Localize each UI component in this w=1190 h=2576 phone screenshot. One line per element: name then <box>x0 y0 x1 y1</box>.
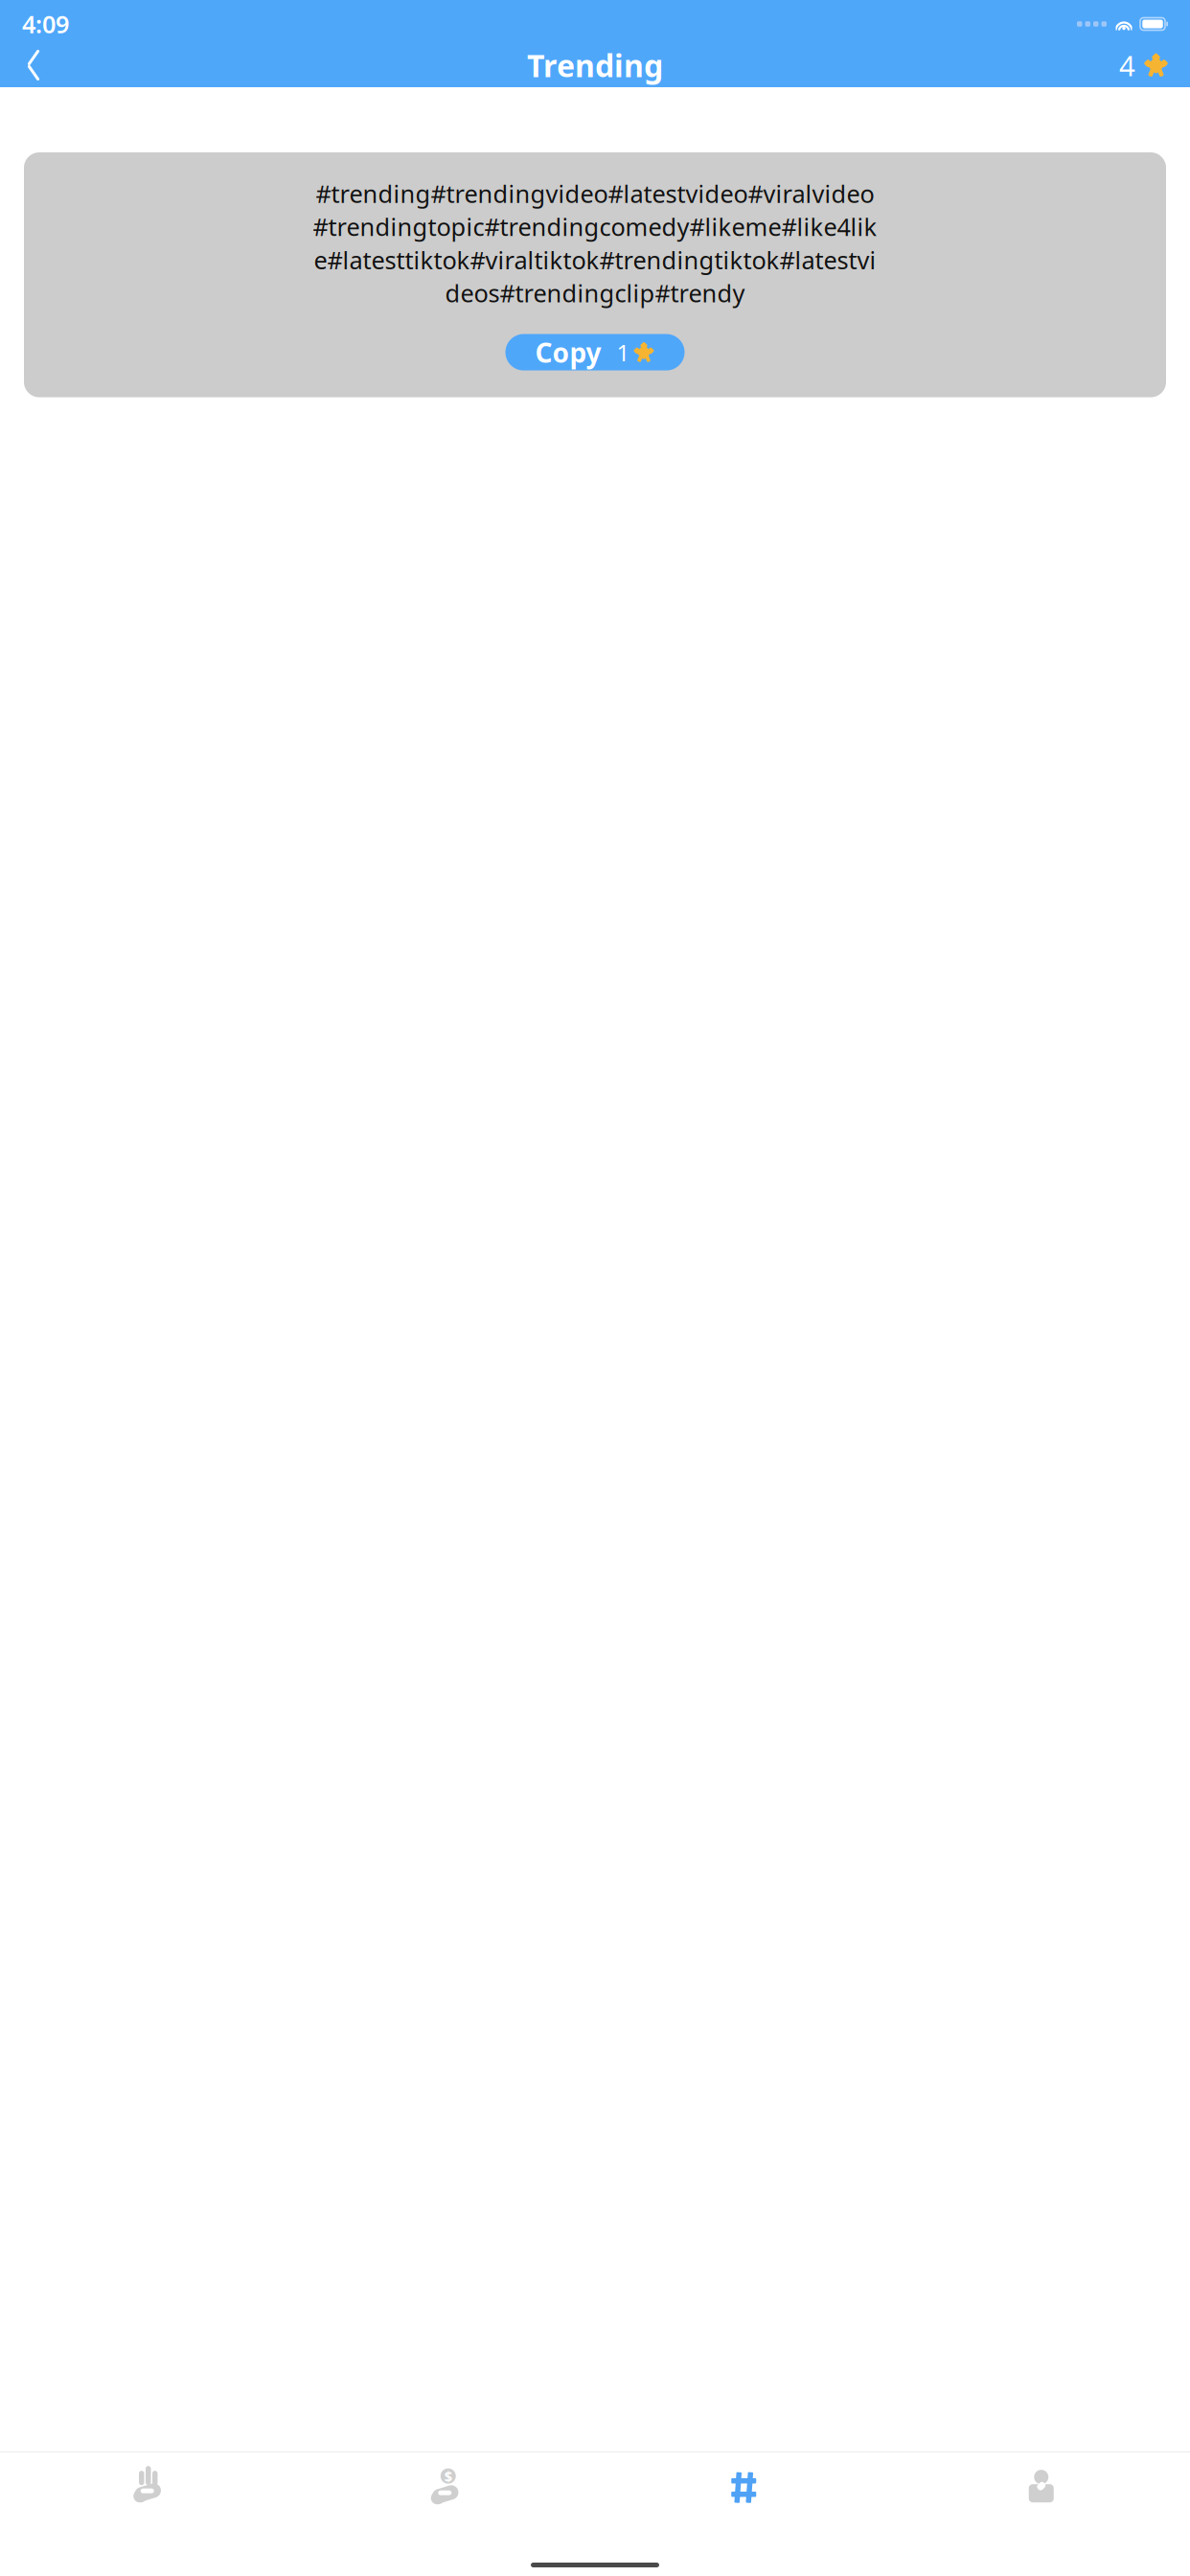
button[interactable]: Earn <box>297 2458 595 2517</box>
button[interactable]: Credits <box>1106 42 1182 88</box>
button[interactable]: Profile <box>892 2458 1190 2517</box>
staticText: $ <box>444 2467 452 2485</box>
button[interactable]: Copy <box>505 334 685 370</box>
button[interactable]: Captions <box>0 2458 297 2517</box>
staticText: deos#trendingclip#trendy <box>445 277 745 309</box>
staticText: 4:09 <box>22 8 69 40</box>
staticText: #trendingtopic#trendingcomedy#likeme#lik… <box>313 210 877 243</box>
button[interactable]: Hashtags <box>595 2458 892 2517</box>
staticText: Copy <box>535 334 601 370</box>
staticText: 1 <box>617 337 630 368</box>
staticText: #trending#trendingvideo#latestvideo#vira… <box>316 177 874 209</box>
staticText: e#latesttiktok#viraltiktok#trendingtikto… <box>314 244 876 276</box>
staticText: Trending <box>527 45 663 86</box>
staticText: 4 <box>1119 46 1135 84</box>
button[interactable]: Back <box>8 42 59 88</box>
